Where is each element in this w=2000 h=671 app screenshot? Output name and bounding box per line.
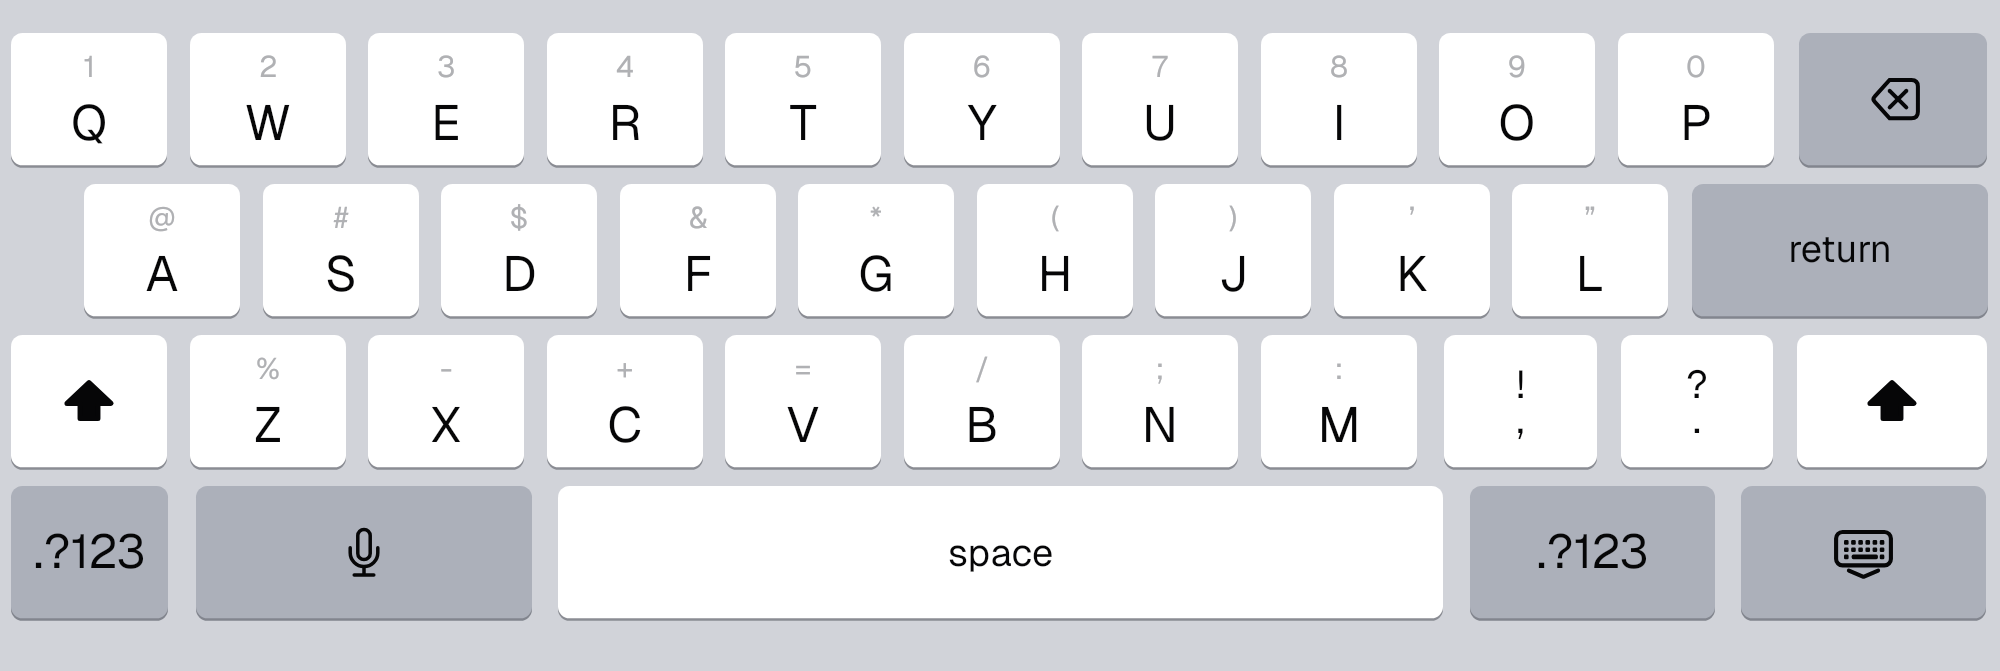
button[interactable] — [1261, 33, 1417, 171]
button[interactable] — [1444, 335, 1597, 473]
button[interactable] — [1082, 335, 1238, 473]
button[interactable] — [368, 335, 524, 473]
button[interactable] — [798, 184, 954, 322]
button[interactable] — [620, 184, 776, 322]
button[interactable] — [977, 184, 1133, 322]
button[interactable] — [441, 184, 597, 322]
button[interactable] — [11, 486, 168, 624]
button[interactable] — [190, 33, 346, 171]
button[interactable]: Shift — [1797, 335, 1987, 473]
button[interactable]: Backspace — [1799, 33, 1987, 171]
button[interactable] — [558, 486, 1443, 624]
button[interactable] — [1621, 335, 1773, 473]
button[interactable] — [190, 335, 346, 473]
button[interactable] — [1261, 335, 1417, 473]
button[interactable] — [1618, 33, 1774, 171]
button[interactable] — [725, 335, 881, 473]
button[interactable] — [904, 335, 1060, 473]
button[interactable] — [1470, 486, 1715, 624]
button[interactable]: Dictation — [196, 486, 532, 624]
button[interactable] — [1512, 184, 1668, 322]
button[interactable] — [547, 33, 703, 171]
button[interactable] — [1439, 33, 1595, 171]
button[interactable] — [263, 184, 419, 322]
button[interactable] — [1082, 33, 1238, 171]
button[interactable]: Shift — [11, 335, 167, 473]
button[interactable] — [1692, 184, 1988, 322]
button[interactable] — [1334, 184, 1490, 322]
button[interactable] — [84, 184, 240, 322]
button[interactable] — [725, 33, 881, 171]
button[interactable] — [904, 33, 1060, 171]
button[interactable] — [11, 33, 167, 171]
button[interactable] — [547, 335, 703, 473]
button[interactable] — [1155, 184, 1311, 322]
button[interactable] — [368, 33, 524, 171]
button[interactable]: Hide keyboard — [1741, 486, 1986, 624]
